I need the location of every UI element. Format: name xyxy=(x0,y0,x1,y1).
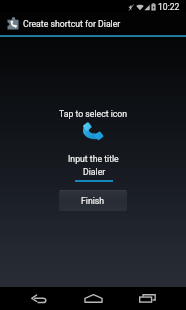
button[interactable]: Recent apps xyxy=(124,287,171,310)
button[interactable]: Finish xyxy=(59,190,127,211)
staticText: Input the title xyxy=(68,154,119,164)
button[interactable]: Home xyxy=(70,287,117,310)
staticText: 10:22 xyxy=(158,2,180,12)
button[interactable]: Back xyxy=(15,287,62,310)
staticText: Finish xyxy=(81,196,105,206)
staticText: Dialer xyxy=(83,167,106,177)
staticText: Tap to select icon xyxy=(59,109,128,119)
button[interactable]: Dialer xyxy=(75,166,113,181)
staticText: Create shortcut for Dialer xyxy=(23,19,121,29)
button[interactable]: Select icon xyxy=(78,121,108,141)
